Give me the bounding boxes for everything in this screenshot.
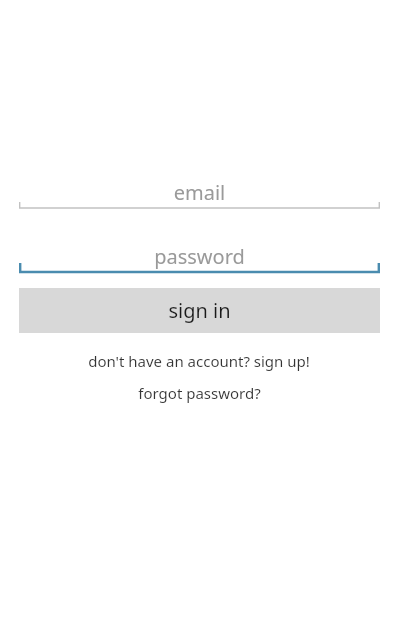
button[interactable]: password <box>19 242 380 274</box>
staticText: email <box>19 179 380 206</box>
button[interactable]: email <box>19 178 380 210</box>
button[interactable]: forgot password? <box>0 380 398 406</box>
staticText: sign in <box>168 297 231 324</box>
staticText: don't have an account? sign up! <box>88 351 310 371</box>
staticText: forgot password? <box>138 383 261 403</box>
button[interactable]: don't have an account? sign up! <box>0 348 398 374</box>
staticText: password <box>19 243 380 270</box>
button[interactable]: sign in <box>19 288 380 333</box>
